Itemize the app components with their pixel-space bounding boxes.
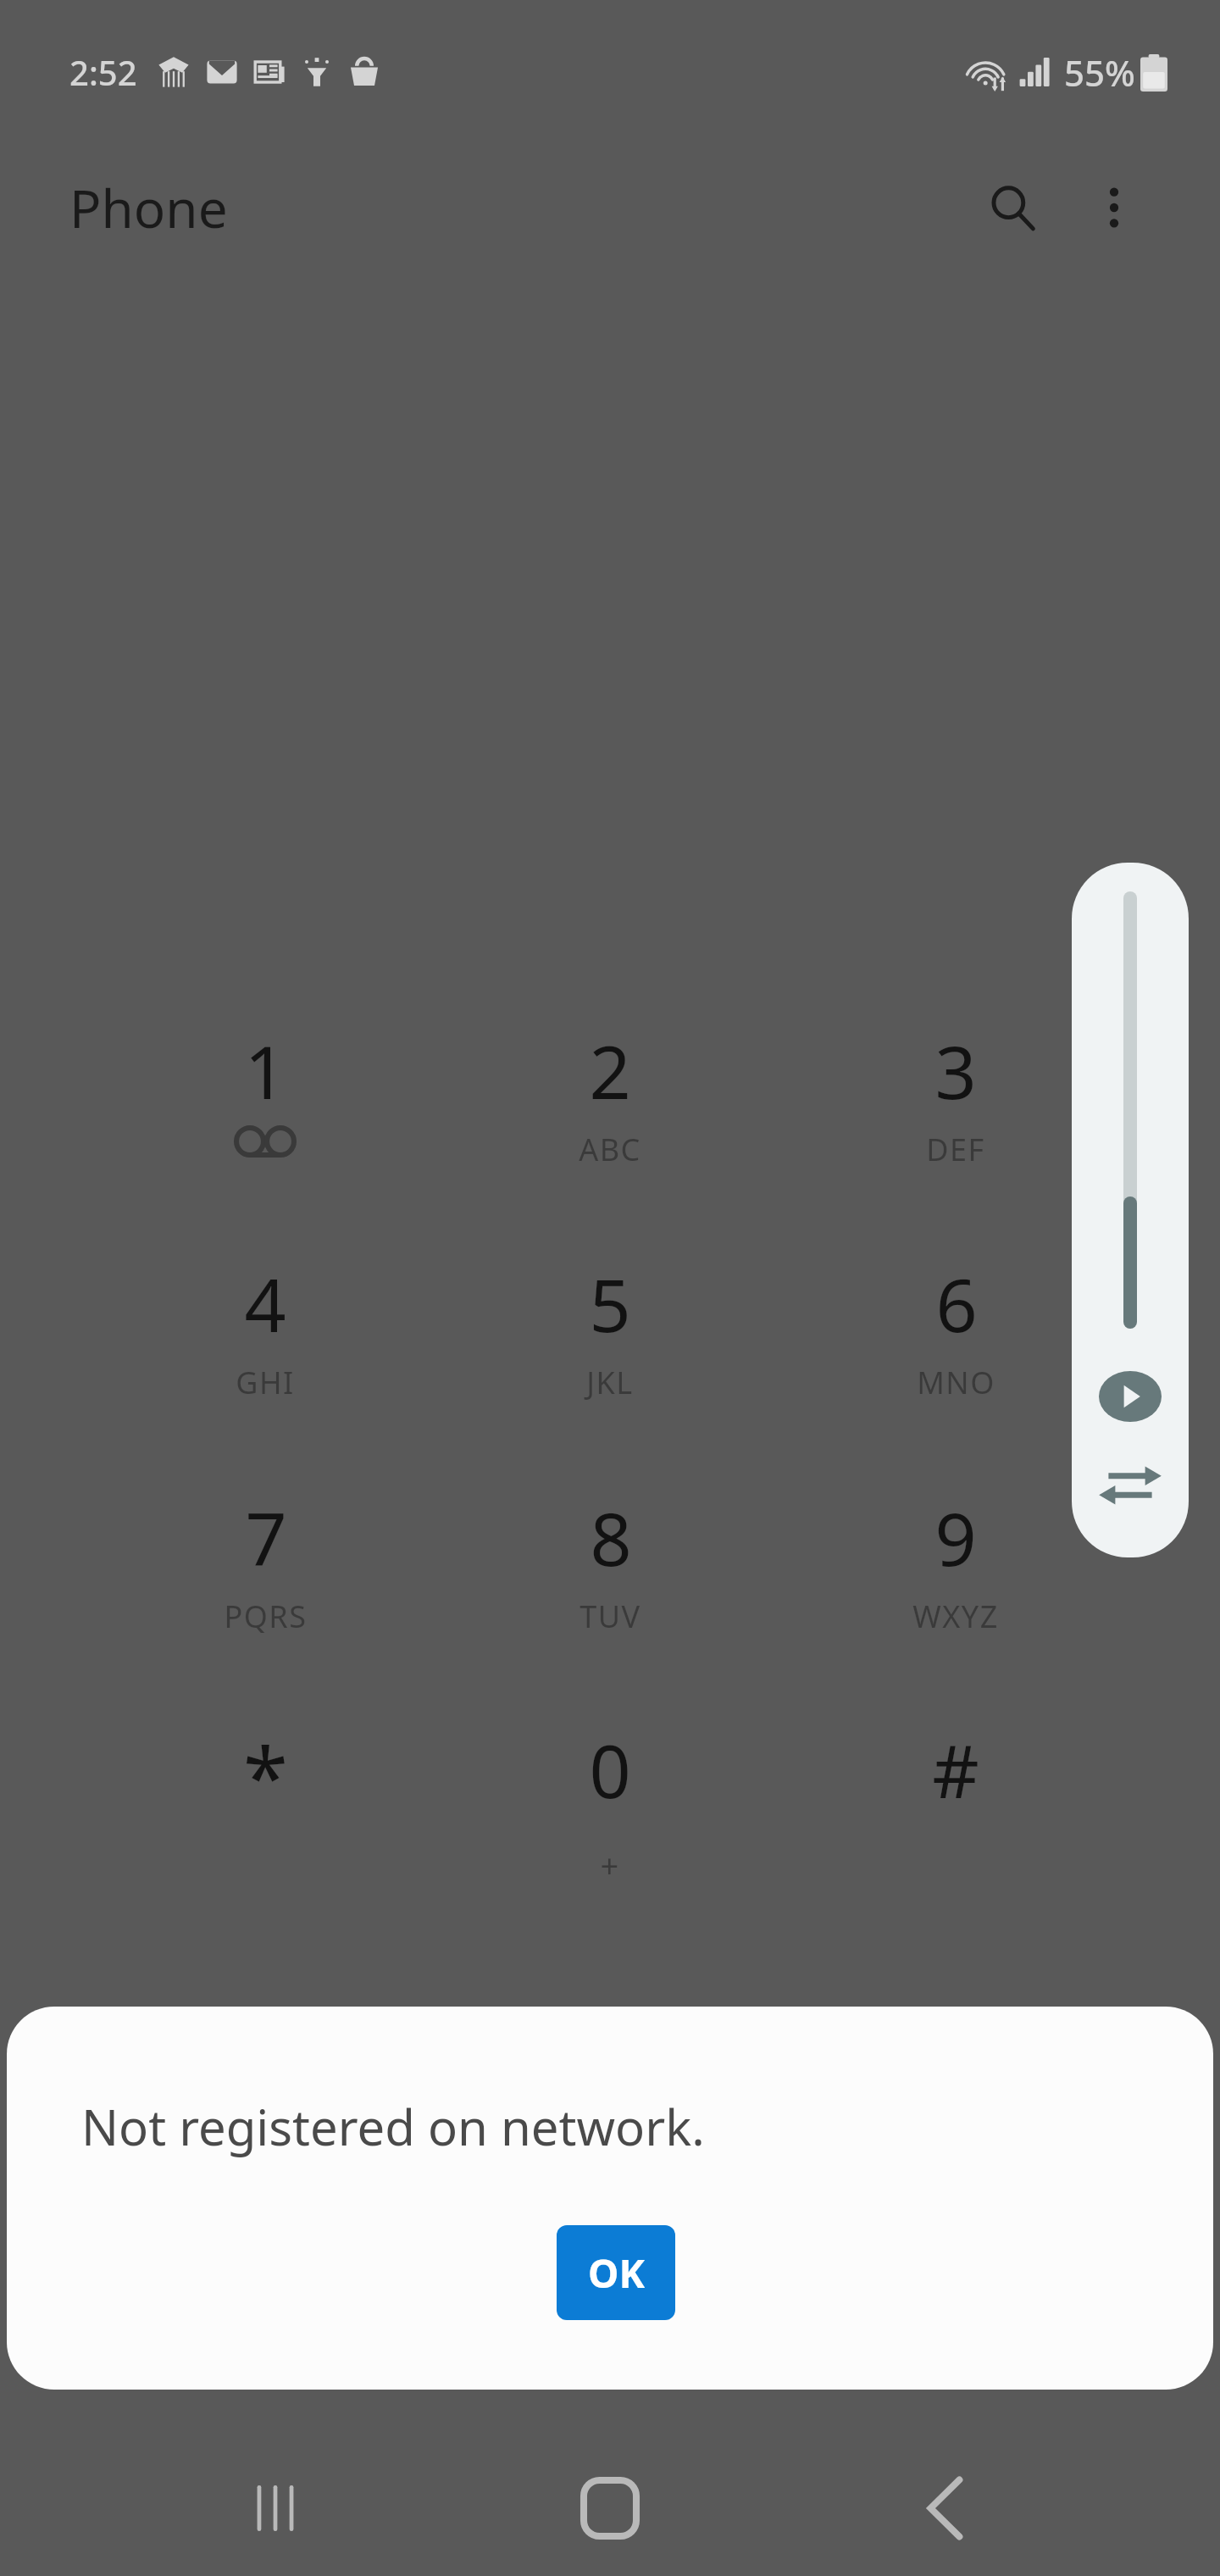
button[interactable]: Scroll controller: [1072, 863, 1189, 1557]
staticText: 2: [589, 1021, 631, 1120]
staticText: JKL: [586, 1362, 634, 1403]
staticText: Not registered on network.: [81, 2093, 705, 2160]
button[interactable]: 9: [812, 1488, 1100, 1700]
button[interactable]: *: [121, 1720, 409, 1932]
staticText: 0: [589, 1720, 631, 1819]
staticText: 2:52: [69, 49, 137, 95]
staticText: 9: [934, 1488, 977, 1587]
staticText: OK: [588, 2246, 645, 2300]
staticText: 5: [589, 1254, 631, 1353]
button[interactable]: 3: [812, 1021, 1100, 1233]
button[interactable]: Home: [542, 2440, 678, 2576]
staticText: #: [932, 1720, 979, 1819]
button[interactable]: 5: [466, 1254, 754, 1466]
button[interactable]: Recents: [208, 2440, 343, 2576]
staticText: 4: [244, 1254, 286, 1353]
staticText: 6: [935, 1254, 978, 1353]
staticText: GHI: [236, 1362, 295, 1403]
button[interactable]: 4: [121, 1254, 409, 1466]
staticText: +: [600, 1843, 620, 1887]
staticText: DEF: [926, 1129, 985, 1170]
button[interactable]: Play: [1099, 1371, 1162, 1422]
button[interactable]: Swap direction: [1096, 1456, 1164, 1515]
button[interactable]: Back: [877, 2440, 1012, 2576]
staticText: *: [243, 1720, 288, 1831]
staticText: 55%: [1064, 48, 1135, 97]
button[interactable]: OK: [557, 2225, 675, 2320]
staticText: 3: [934, 1021, 977, 1120]
button[interactable]: 0: [466, 1720, 754, 1932]
button[interactable]: 1: [121, 1021, 409, 1233]
button[interactable]: 7: [121, 1488, 409, 1700]
button[interactable]: 8: [466, 1488, 754, 1700]
staticText: ABC: [579, 1129, 641, 1170]
button[interactable]: 6: [812, 1254, 1100, 1466]
staticText: PQRS: [224, 1596, 308, 1637]
staticText: 1: [244, 1021, 286, 1120]
staticText: TUV: [579, 1596, 641, 1637]
button[interactable]: More options: [1067, 161, 1161, 254]
button[interactable]: 2: [466, 1021, 754, 1233]
staticText: Phone: [69, 172, 228, 243]
button[interactable]: Search: [966, 161, 1059, 254]
staticText: 8: [590, 1488, 632, 1587]
staticText: MNO: [917, 1362, 995, 1403]
button[interactable]: #: [812, 1720, 1100, 1932]
staticText: 7: [245, 1488, 287, 1587]
staticText: WXYZ: [912, 1596, 999, 1637]
